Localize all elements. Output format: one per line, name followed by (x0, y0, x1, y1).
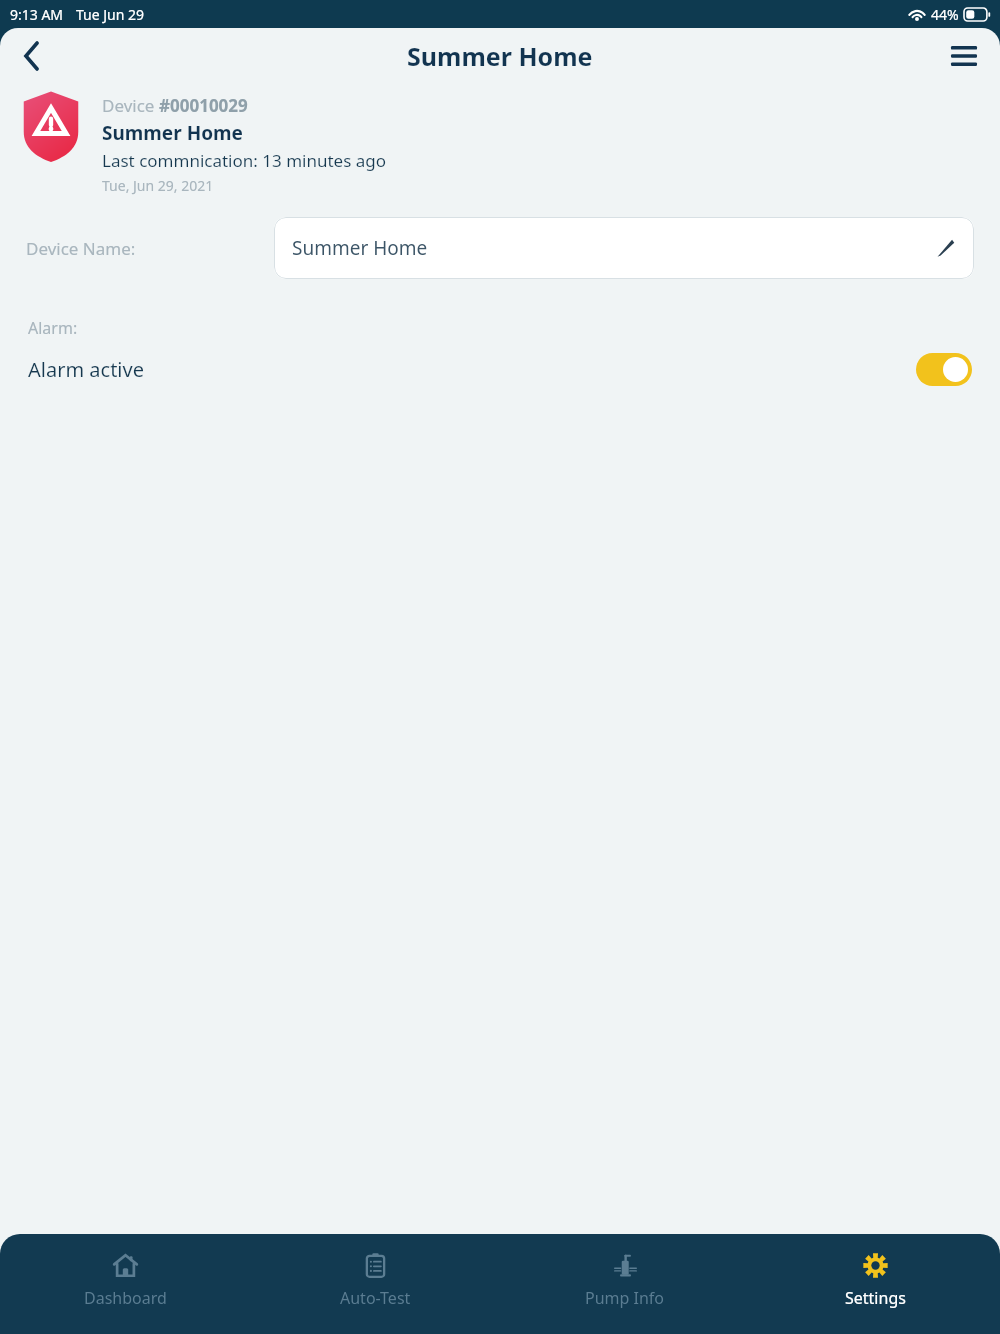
staticText: Tue, Jun 29, 2021 (102, 176, 214, 195)
staticText: Summer Home (292, 235, 428, 261)
staticText: Alarm active (28, 356, 144, 383)
staticText: 44% (931, 5, 959, 24)
staticText: Auto-Test (340, 1287, 411, 1309)
button[interactable]: Settings (750, 1250, 1000, 1334)
button[interactable]: Pump Info (500, 1250, 750, 1334)
staticText: Tue Jun 29 (76, 5, 145, 24)
staticText: #00010029 (159, 94, 248, 117)
staticText: Dashboard (84, 1287, 167, 1309)
button[interactable]: Dashboard (0, 1250, 250, 1334)
button[interactable]: Summer Home (274, 217, 974, 279)
staticText: Summer Home (407, 39, 593, 73)
button[interactable]: Back (8, 32, 56, 80)
staticText: 9:13 AM (10, 5, 64, 24)
staticText: Last commnication: 13 minutes ago (102, 149, 386, 172)
button[interactable]: Alarm active toggle (916, 353, 972, 386)
staticText: Summer Home (102, 120, 243, 146)
staticText: Alarm: (28, 317, 78, 339)
button[interactable]: Auto-Test (250, 1250, 500, 1334)
staticText: Pump Info (585, 1287, 665, 1309)
button[interactable]: Alarm active (28, 353, 972, 386)
staticText: Device Name: (26, 237, 136, 260)
button[interactable]: Menu (940, 32, 988, 80)
staticText: Settings (845, 1287, 906, 1309)
staticText: Device (102, 94, 159, 117)
